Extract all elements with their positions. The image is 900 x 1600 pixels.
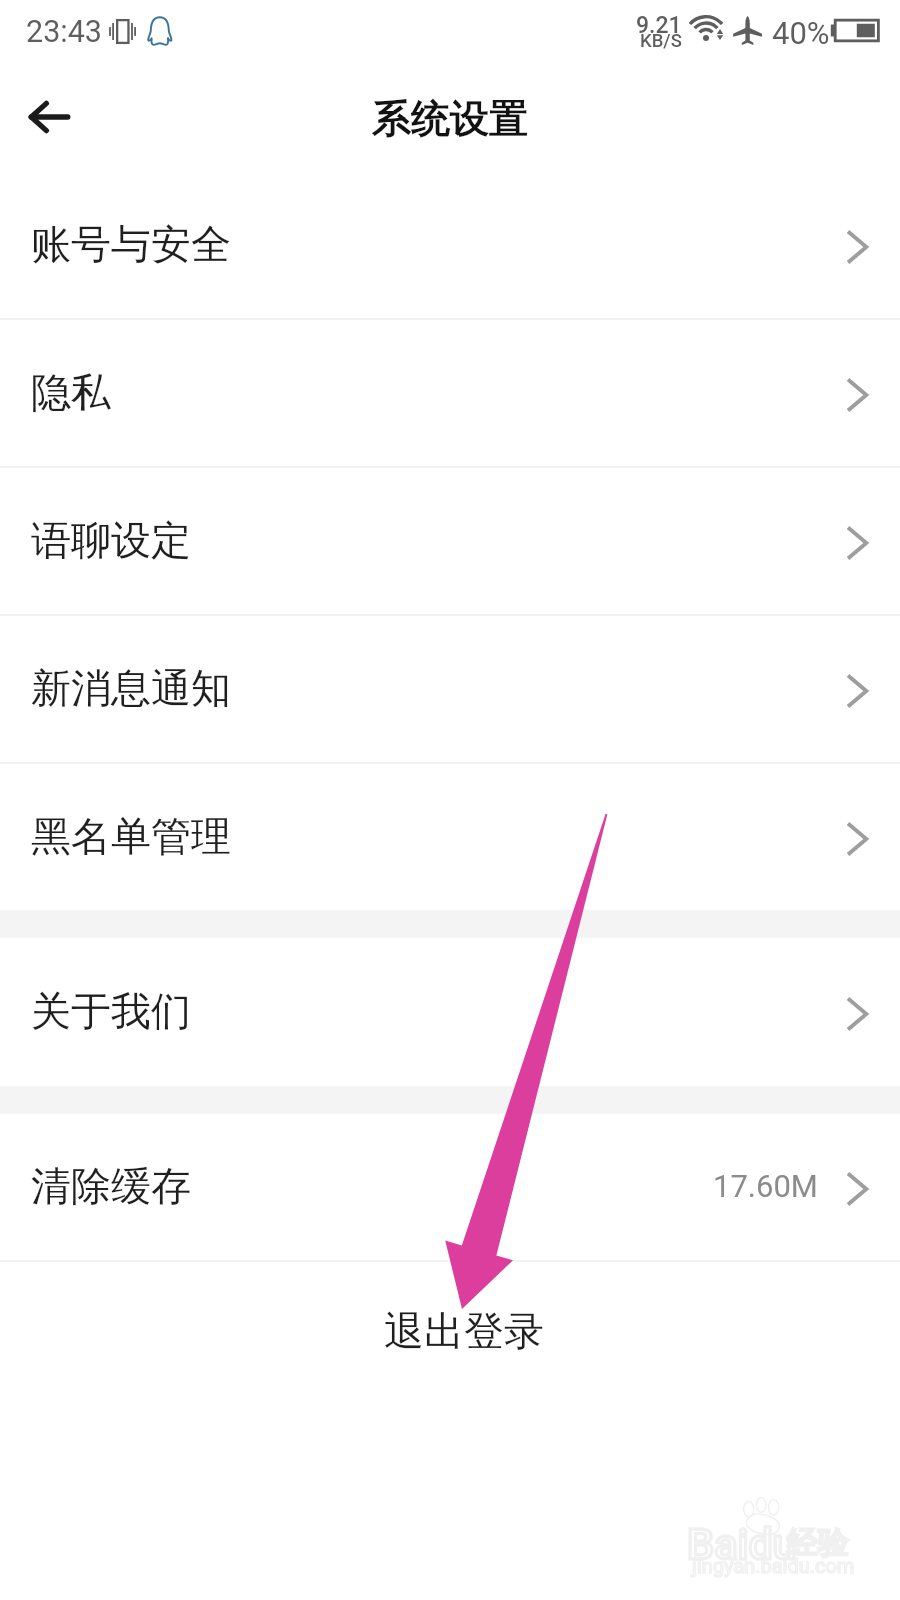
staticText: 经验 — [787, 1523, 849, 1562]
staticText: 17.60M — [713, 1168, 818, 1204]
button[interactable]: Back — [0, 69, 100, 169]
button[interactable]: 关于我们 — [0, 938, 900, 1086]
staticText: 账号与安全 — [31, 219, 231, 269]
staticText: 新消息通知 — [31, 663, 231, 713]
button[interactable]: 语聊设定 — [0, 468, 900, 614]
staticText: 40% — [772, 15, 830, 51]
staticText: 退出登录 — [384, 1306, 544, 1356]
staticText: 9.21 — [636, 12, 682, 39]
button[interactable]: 黑名单管理 — [0, 764, 900, 910]
staticText: jingyan.baidu.com — [692, 1554, 855, 1577]
staticText: 黑名单管理 — [31, 811, 231, 861]
staticText: KB/S — [640, 30, 682, 52]
button[interactable]: 清除缓存 — [0, 1114, 900, 1260]
staticText: 系统设置 — [372, 94, 528, 143]
button[interactable]: 账号与安全 — [0, 172, 900, 318]
staticText: 语聊设定 — [31, 515, 191, 565]
staticText: Baidu — [687, 1519, 797, 1569]
staticText: 23:43 — [26, 14, 102, 50]
button[interactable]: 新消息通知 — [0, 616, 900, 762]
button[interactable]: 隐私 — [0, 320, 900, 466]
staticText: 清除缓存 — [31, 1161, 191, 1211]
button[interactable]: 退出登录 — [0, 1262, 900, 1412]
staticText: 关于我们 — [31, 986, 191, 1036]
staticText: 隐私 — [31, 367, 111, 417]
